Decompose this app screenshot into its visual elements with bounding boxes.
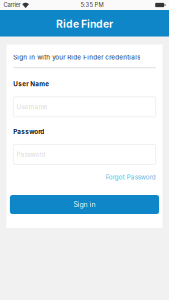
staticText: Password <box>16 151 45 158</box>
staticText: Sign in <box>73 200 95 209</box>
staticText: Password <box>13 128 44 135</box>
staticText: User Name <box>13 80 49 88</box>
staticText: Sign in with your Ride Finder credential… <box>13 53 140 61</box>
staticText: Ride Finder <box>56 18 113 30</box>
staticText: Forgot Password <box>106 173 156 181</box>
button[interactable]: Sign in <box>10 195 159 214</box>
button[interactable]: Forgot Password <box>106 173 156 181</box>
staticText: Carrier <box>3 1 20 8</box>
staticText: Username <box>16 103 47 111</box>
staticText: 5:35 PM <box>80 1 103 8</box>
